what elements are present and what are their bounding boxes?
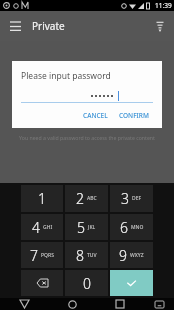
button[interactable]: Open navigation drawer	[4, 15, 26, 37]
button[interactable]	[21, 91, 153, 103]
staticText: GHI	[43, 224, 53, 231]
staticText: 1	[38, 189, 46, 208]
staticText: 5	[77, 218, 85, 237]
button[interactable]: Backspace	[21, 270, 63, 296]
button[interactable]: CANCEL	[79, 109, 112, 122]
button[interactable]: 5	[65, 214, 108, 240]
button[interactable]: 9	[110, 242, 153, 268]
button[interactable]: 4	[21, 214, 63, 240]
staticText: Private	[32, 19, 65, 33]
staticText: 3	[121, 189, 129, 208]
staticText: CONFIRM	[119, 111, 149, 120]
staticText: 7	[30, 246, 38, 265]
button[interactable]: CONFIRM	[115, 109, 153, 122]
staticText: 8	[76, 246, 84, 265]
staticText: TUV	[87, 252, 97, 259]
button[interactable]: Sort	[149, 15, 171, 37]
staticText: You need a valid password to access the …	[6, 134, 168, 141]
staticText: CANCEL	[83, 111, 108, 120]
button[interactable]: Back	[0, 298, 48, 310]
staticText: ABC	[87, 195, 97, 202]
button[interactable]: Switch keyboard	[144, 298, 174, 310]
staticText: 9	[119, 246, 127, 265]
button[interactable]: 6	[110, 214, 153, 240]
button[interactable]: Recent apps	[96, 298, 144, 310]
staticText: MNO	[131, 224, 144, 231]
button[interactable]: 2	[65, 185, 108, 212]
button[interactable]: 1	[21, 185, 63, 212]
staticText: DEF	[132, 195, 142, 202]
button[interactable]: 3	[110, 185, 153, 212]
staticText: 2	[76, 189, 84, 208]
staticText: 11:39	[155, 1, 172, 10]
button[interactable]: Enter	[110, 270, 153, 296]
staticText: PQRS	[41, 252, 54, 259]
button[interactable]: Home	[48, 298, 96, 310]
button[interactable]: 8	[65, 242, 108, 268]
staticText: JKL	[88, 224, 96, 231]
staticText: Please input password	[21, 70, 111, 82]
button[interactable]: 7	[21, 242, 63, 268]
staticText: 4	[32, 218, 40, 237]
staticText: 0	[83, 274, 91, 293]
button[interactable]: 0	[65, 270, 108, 296]
staticText: 6	[120, 218, 128, 237]
staticText: WXYZ	[130, 252, 144, 259]
